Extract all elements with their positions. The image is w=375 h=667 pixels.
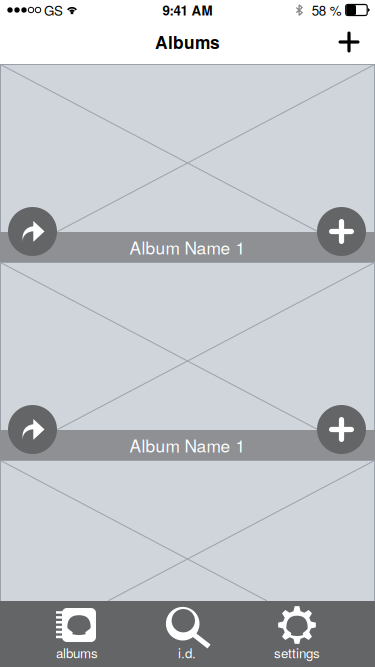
button[interactable]: Add to album bbox=[317, 405, 366, 454]
button[interactable]: Share album bbox=[8, 207, 57, 256]
staticText: Albums bbox=[155, 30, 220, 54]
button[interactable]: Add album bbox=[327, 20, 371, 64]
staticText: i.d. bbox=[178, 643, 196, 662]
button[interactable]: Share album bbox=[8, 405, 57, 454]
staticText: 9:41 AM bbox=[162, 0, 212, 20]
button[interactable]: albums bbox=[22, 601, 132, 667]
staticText: settings bbox=[274, 643, 320, 662]
button[interactable]: i.d. bbox=[132, 601, 242, 667]
staticText: Album Name 1 bbox=[129, 235, 245, 259]
button[interactable]: settings bbox=[242, 601, 352, 667]
staticText: Album Name 1 bbox=[129, 433, 245, 457]
staticText: GS bbox=[44, 0, 63, 20]
staticText: albums bbox=[56, 643, 98, 662]
button[interactable]: Add to album bbox=[317, 207, 366, 256]
staticText: 58 % bbox=[312, 0, 342, 20]
